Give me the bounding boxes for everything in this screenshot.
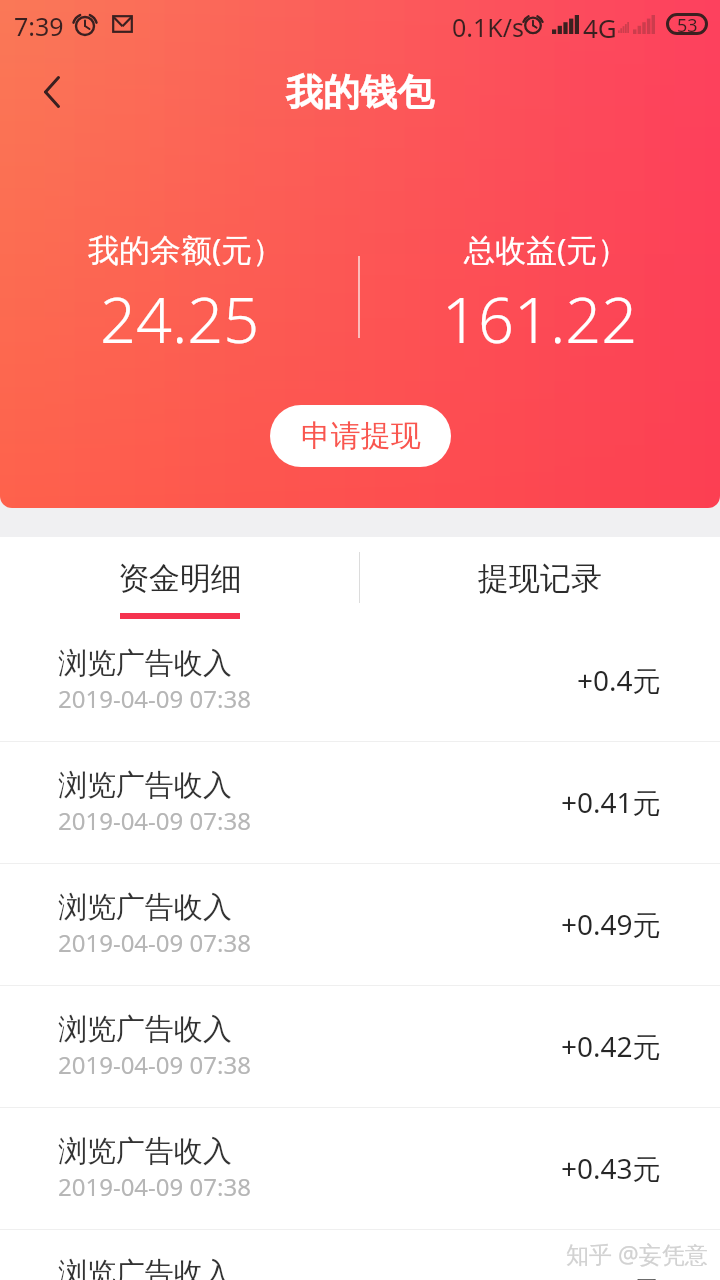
button[interactable]: Back <box>24 64 80 120</box>
staticText: 161.22 <box>442 276 638 362</box>
staticText: +0.45元 <box>561 1271 661 1280</box>
button[interactable]: 浏览广告收入 <box>0 864 720 985</box>
button[interactable]: 提现记录 <box>360 537 720 620</box>
staticText: 7:39 <box>14 9 64 43</box>
staticText: 浏览广告收入 <box>58 1011 232 1048</box>
staticText: +0.49元 <box>561 905 661 943</box>
staticText: +0.4元 <box>577 661 661 699</box>
staticText: 2019-04-09 07:38 <box>58 804 251 837</box>
staticText: 浏览广告收入 <box>58 1133 232 1170</box>
staticText: 2019-04-09 07:38 <box>58 926 251 959</box>
staticText: 浏览广告收入 <box>58 645 232 682</box>
staticText: +0.43元 <box>561 1149 661 1187</box>
staticText: 申请提现 <box>301 417 421 455</box>
button[interactable]: 浏览广告收入 <box>0 986 720 1107</box>
staticText: 4G <box>583 10 617 45</box>
staticText: 浏览广告收入 <box>58 889 232 926</box>
button[interactable]: 资金明细 <box>0 537 360 620</box>
button[interactable]: 浏览广告收入 <box>0 620 720 741</box>
staticText: 知乎 @妄凭意 <box>566 1238 708 1269</box>
button[interactable]: 浏览广告收入 <box>0 1108 720 1229</box>
staticText: 我的钱包 <box>286 69 434 116</box>
staticText: 资金明细 <box>118 559 242 598</box>
staticText: 2019-04-09 07:38 <box>58 682 251 715</box>
staticText: 2019-04-09 07:38 <box>58 1048 251 1081</box>
staticText: +0.42元 <box>561 1027 661 1065</box>
staticText: 浏览广告收入 <box>58 767 232 804</box>
button[interactable]: 浏览广告收入 <box>0 1230 720 1280</box>
staticText: 我的余额(元） <box>88 228 284 270</box>
staticText: 提现记录 <box>478 559 602 598</box>
staticText: 53 <box>677 13 698 35</box>
staticText: 总收益(元） <box>464 228 629 270</box>
staticText: +0.41元 <box>561 783 661 821</box>
staticText: 24.25 <box>100 276 260 362</box>
staticText: 2019-04-09 07:38 <box>58 1170 251 1203</box>
button[interactable]: 浏览广告收入 <box>0 742 720 863</box>
staticText: 0.1K/s <box>452 10 525 44</box>
button[interactable]: 申请提现 <box>270 405 451 467</box>
staticText: 浏览广告收入 <box>58 1255 232 1280</box>
